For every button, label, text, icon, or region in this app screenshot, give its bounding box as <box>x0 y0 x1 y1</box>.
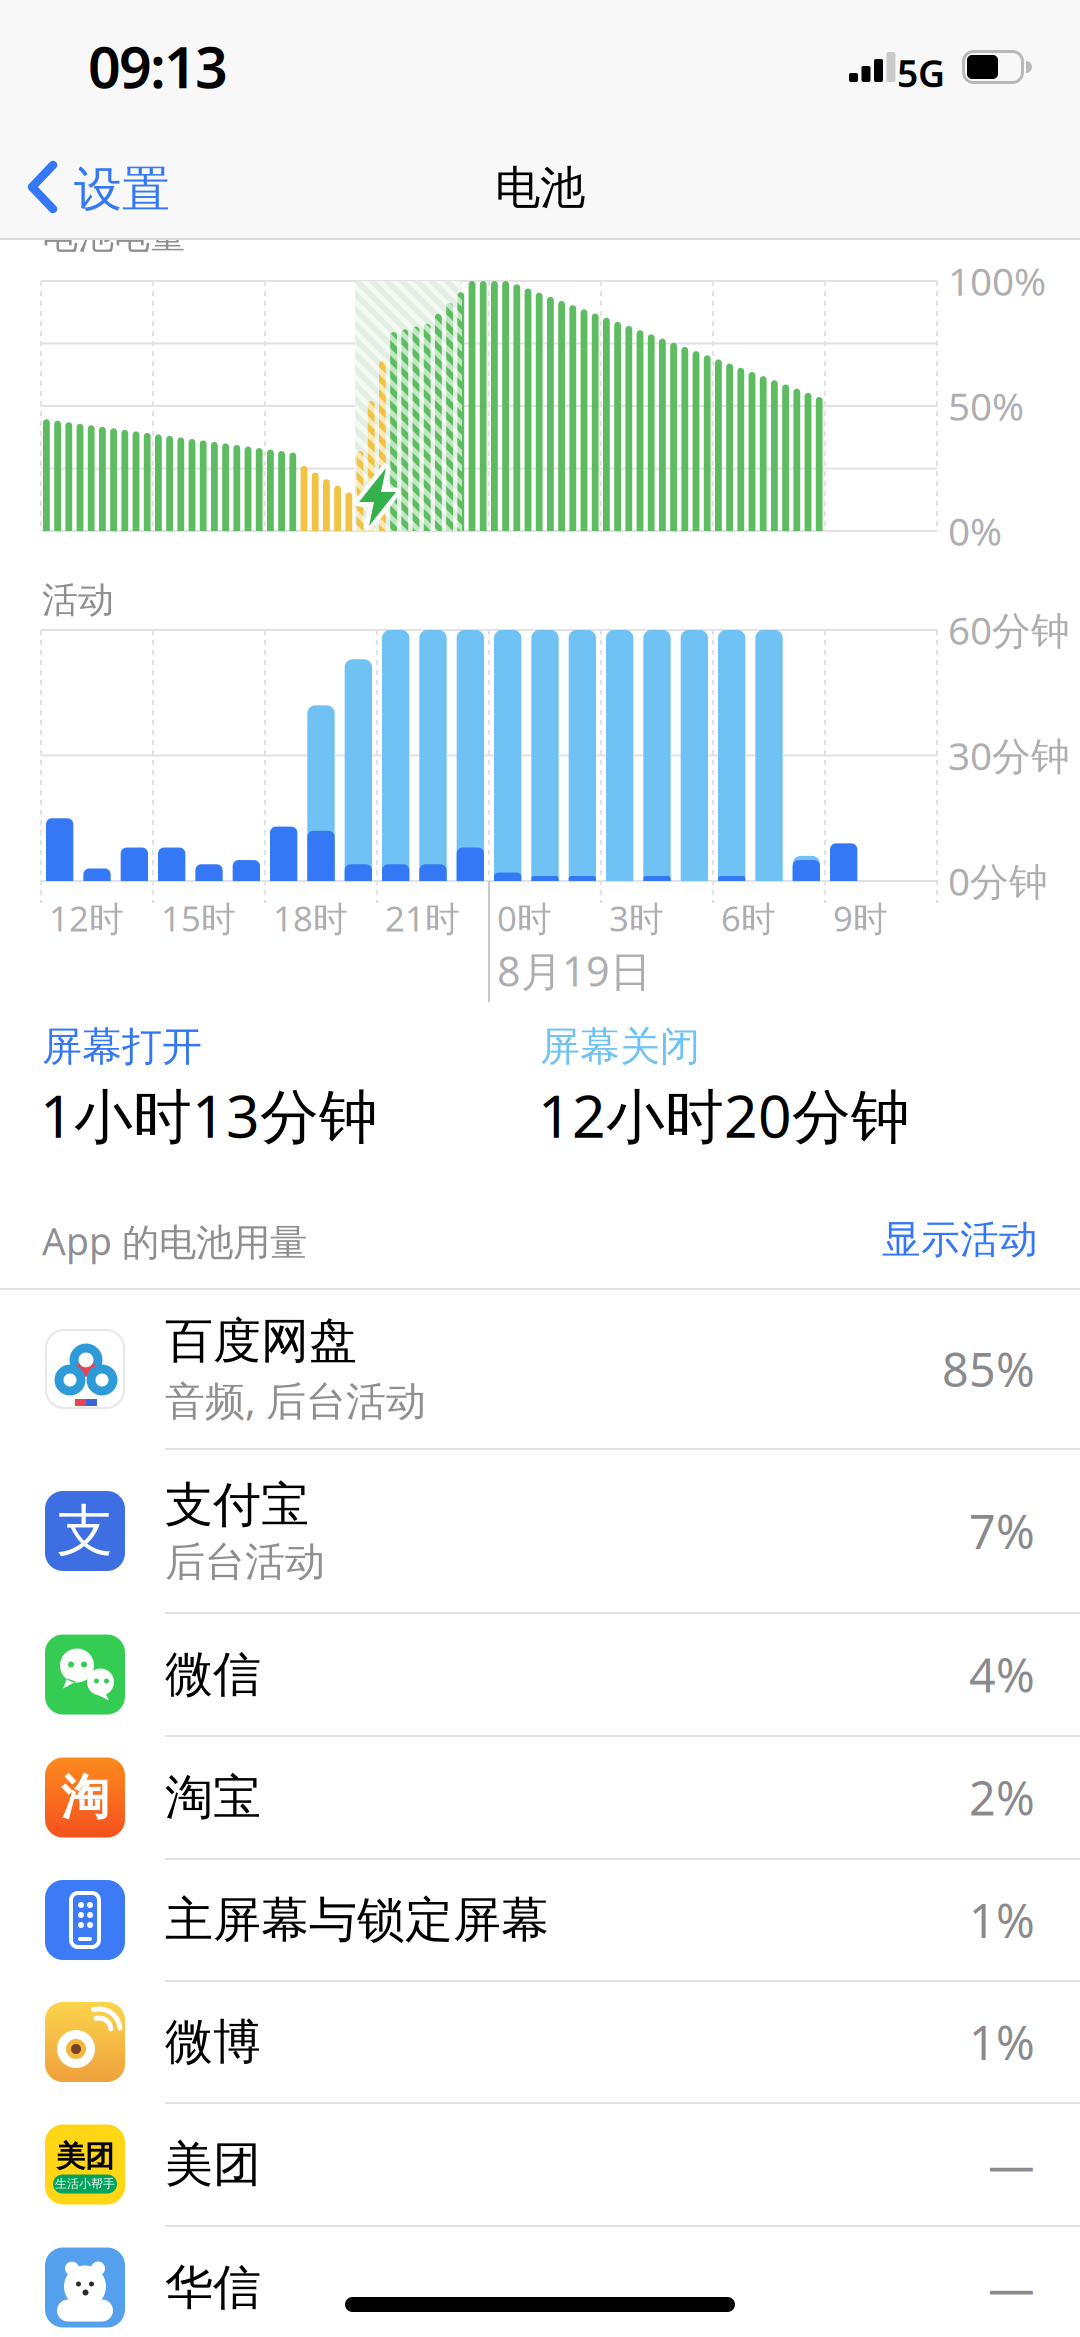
staticText: 12小时20分钟 <box>538 1076 910 1154</box>
staticText: 7% <box>969 1500 1035 1562</box>
button[interactable]: 美团 <box>0 2104 1080 2225</box>
staticText: 21时 <box>385 895 460 941</box>
button[interactable]: 微信 <box>0 1614 1080 1735</box>
button[interactable]: 百度网盘 <box>0 1290 1080 1448</box>
staticText: 百度网盘 <box>165 1311 357 1370</box>
staticText: 生活小帮手 <box>55 2176 115 2191</box>
staticText: 1小时13分钟 <box>40 1076 378 1154</box>
button[interactable]: 主屏幕与锁定屏幕 <box>0 1860 1080 1980</box>
staticText: 屏幕打开 <box>42 1022 202 1071</box>
staticText: 0时 <box>497 895 552 941</box>
staticText: 30分钟 <box>948 729 1070 781</box>
staticText: 支付宝 <box>165 1475 309 1534</box>
button[interactable]: 微博 <box>0 1982 1080 2102</box>
button[interactable]: 华信 <box>0 2227 1080 2337</box>
staticText: 15时 <box>161 895 236 941</box>
button[interactable]: 淘 <box>0 1737 1080 1858</box>
staticText: — <box>988 2133 1035 2195</box>
staticText: 2% <box>969 1766 1035 1828</box>
staticText: 9时 <box>833 895 888 941</box>
staticText: 电池电量 <box>42 214 186 258</box>
button[interactable]: 支 <box>0 1450 1080 1612</box>
staticText: 0% <box>948 505 1002 556</box>
staticText: 09:13 <box>88 28 228 104</box>
button[interactable]: 返回设置 <box>26 152 206 222</box>
staticText: 18时 <box>273 895 348 941</box>
staticText: 1% <box>969 2011 1035 2073</box>
staticText: 100% <box>948 255 1046 306</box>
staticText: 屏幕关闭 <box>540 1022 700 1071</box>
staticText: 美团 <box>56 2138 114 2174</box>
staticText: 6时 <box>721 895 776 941</box>
staticText: 华信 <box>165 2258 261 2317</box>
staticText: 淘 <box>61 1768 109 1827</box>
staticText: 支 <box>57 1497 113 1565</box>
staticText: 显示活动 <box>882 1216 1038 1263</box>
staticText: 85% <box>942 1338 1035 1400</box>
staticText: 主屏幕与锁定屏幕 <box>165 1890 549 1949</box>
staticText: 8月19日 <box>497 943 651 998</box>
staticText: — <box>988 2256 1035 2318</box>
staticText: 0分钟 <box>948 855 1048 906</box>
staticText: App 的电池用量 <box>42 1216 307 1266</box>
staticText: 音频, 后台活动 <box>165 1373 426 1426</box>
staticText: 5G <box>897 48 945 98</box>
staticText: 3时 <box>609 895 664 941</box>
staticText: 活动 <box>42 578 114 622</box>
staticText: 1% <box>969 1889 1035 1951</box>
staticText: 微信 <box>165 1645 261 1704</box>
button[interactable]: 显示活动 <box>882 1216 1038 1263</box>
staticText: 美团 <box>165 2135 261 2194</box>
staticText: 60分钟 <box>948 604 1070 655</box>
staticText: 电池 <box>495 160 585 216</box>
staticText: 4% <box>969 1643 1035 1705</box>
staticText: 设置 <box>74 160 170 219</box>
staticText: 淘宝 <box>165 1768 261 1827</box>
staticText: 50% <box>948 380 1024 431</box>
staticText: 12时 <box>49 895 124 941</box>
staticText: 微博 <box>165 2012 261 2071</box>
staticText: 后台活动 <box>165 1537 325 1586</box>
